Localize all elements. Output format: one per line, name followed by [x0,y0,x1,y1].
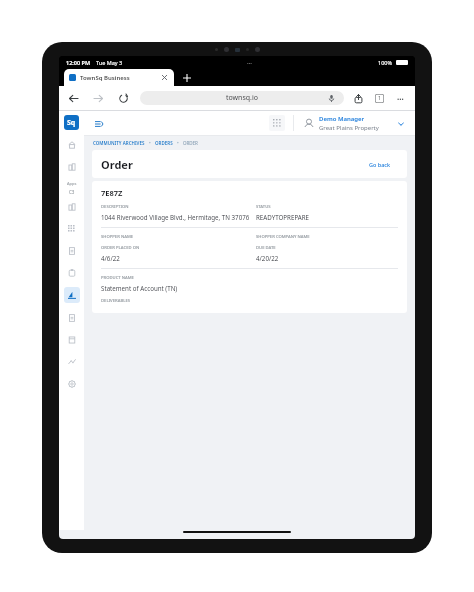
staticText: Order [101,157,133,172]
button[interactable]: Reload [117,92,130,105]
staticText: DUE DATE [256,245,276,251]
button[interactable]: Archive [64,332,79,347]
staticText: Sq [67,118,76,128]
staticText: townsq.io [226,93,259,103]
button[interactable]: TownSq Business [64,69,174,86]
button[interactable]: Back [67,92,80,105]
button[interactable]: Demo Manager [301,113,407,134]
staticText: Statement of Account (TN) [101,284,178,292]
staticText: ··· [397,93,404,104]
staticText: READYTOPREPARE [256,213,310,221]
button[interactable]: ORDERS [155,140,173,146]
button[interactable]: Reports [64,310,79,325]
staticText: Tue May 3 [96,59,123,66]
button[interactable]: New tab [180,71,194,85]
button[interactable]: Go back [362,158,398,171]
staticText: Go back [369,161,391,168]
button[interactable]: Settings [64,376,79,391]
staticText: Apps [67,181,77,186]
button[interactable]: Tabs [373,92,386,105]
button[interactable]: Properties [64,199,79,214]
staticText: ORDER [183,140,198,146]
staticText: ORDER PLACED ON [101,245,140,251]
staticText: • [177,140,179,146]
staticText: PRODUCT NAME [101,275,134,281]
button[interactable]: Tasks [64,265,79,280]
staticText: 1044 Riverwood Village Blvd., Hermitage,… [101,213,250,221]
button[interactable]: Voice search [326,93,336,103]
button[interactable]: Orders [64,287,80,303]
staticText: ··· [247,59,253,67]
button[interactable]: Share [352,92,365,105]
staticText: STATUS [256,204,271,210]
button[interactable]: Close tab [160,73,169,82]
staticText: TownSq Business [80,74,130,82]
staticText: 4/6/22 [101,254,120,262]
staticText: DELIVERABLES [101,298,131,304]
staticText: SHOPPER NAME [101,234,134,240]
staticText: 4/20/22 [256,254,279,262]
button[interactable]: Apps grid [269,115,285,131]
button[interactable]: Grid [64,221,79,236]
staticText: 12:00 PM [66,59,91,66]
button[interactable]: TownSq home [64,115,79,130]
button[interactable]: Building [64,159,79,174]
staticText: COMMUNITY ARCHIVES [93,140,145,146]
button[interactable]: Analytics [64,354,79,369]
staticText: Demo Manager [319,115,365,123]
staticText: • [149,140,151,146]
staticText: 7E87Z [101,188,123,198]
button[interactable]: Community [64,137,79,152]
button[interactable]: Menu [92,117,105,130]
staticText: ORDERS [155,140,173,146]
button[interactable]: Forward [92,92,105,105]
staticText: DESCRIPTION [101,204,129,210]
staticText: C3 [69,189,75,195]
staticText: 100% [378,59,393,66]
staticText: 1 [378,95,381,102]
staticText: SHOPPER COMPANY NAME [256,234,310,240]
staticText: Great Plains Property [319,124,379,132]
button[interactable]: Documents [64,243,79,258]
button[interactable]: More options [394,92,407,105]
button[interactable]: townsq.io [140,91,344,105]
button[interactable]: COMMUNITY ARCHIVES [93,140,145,146]
